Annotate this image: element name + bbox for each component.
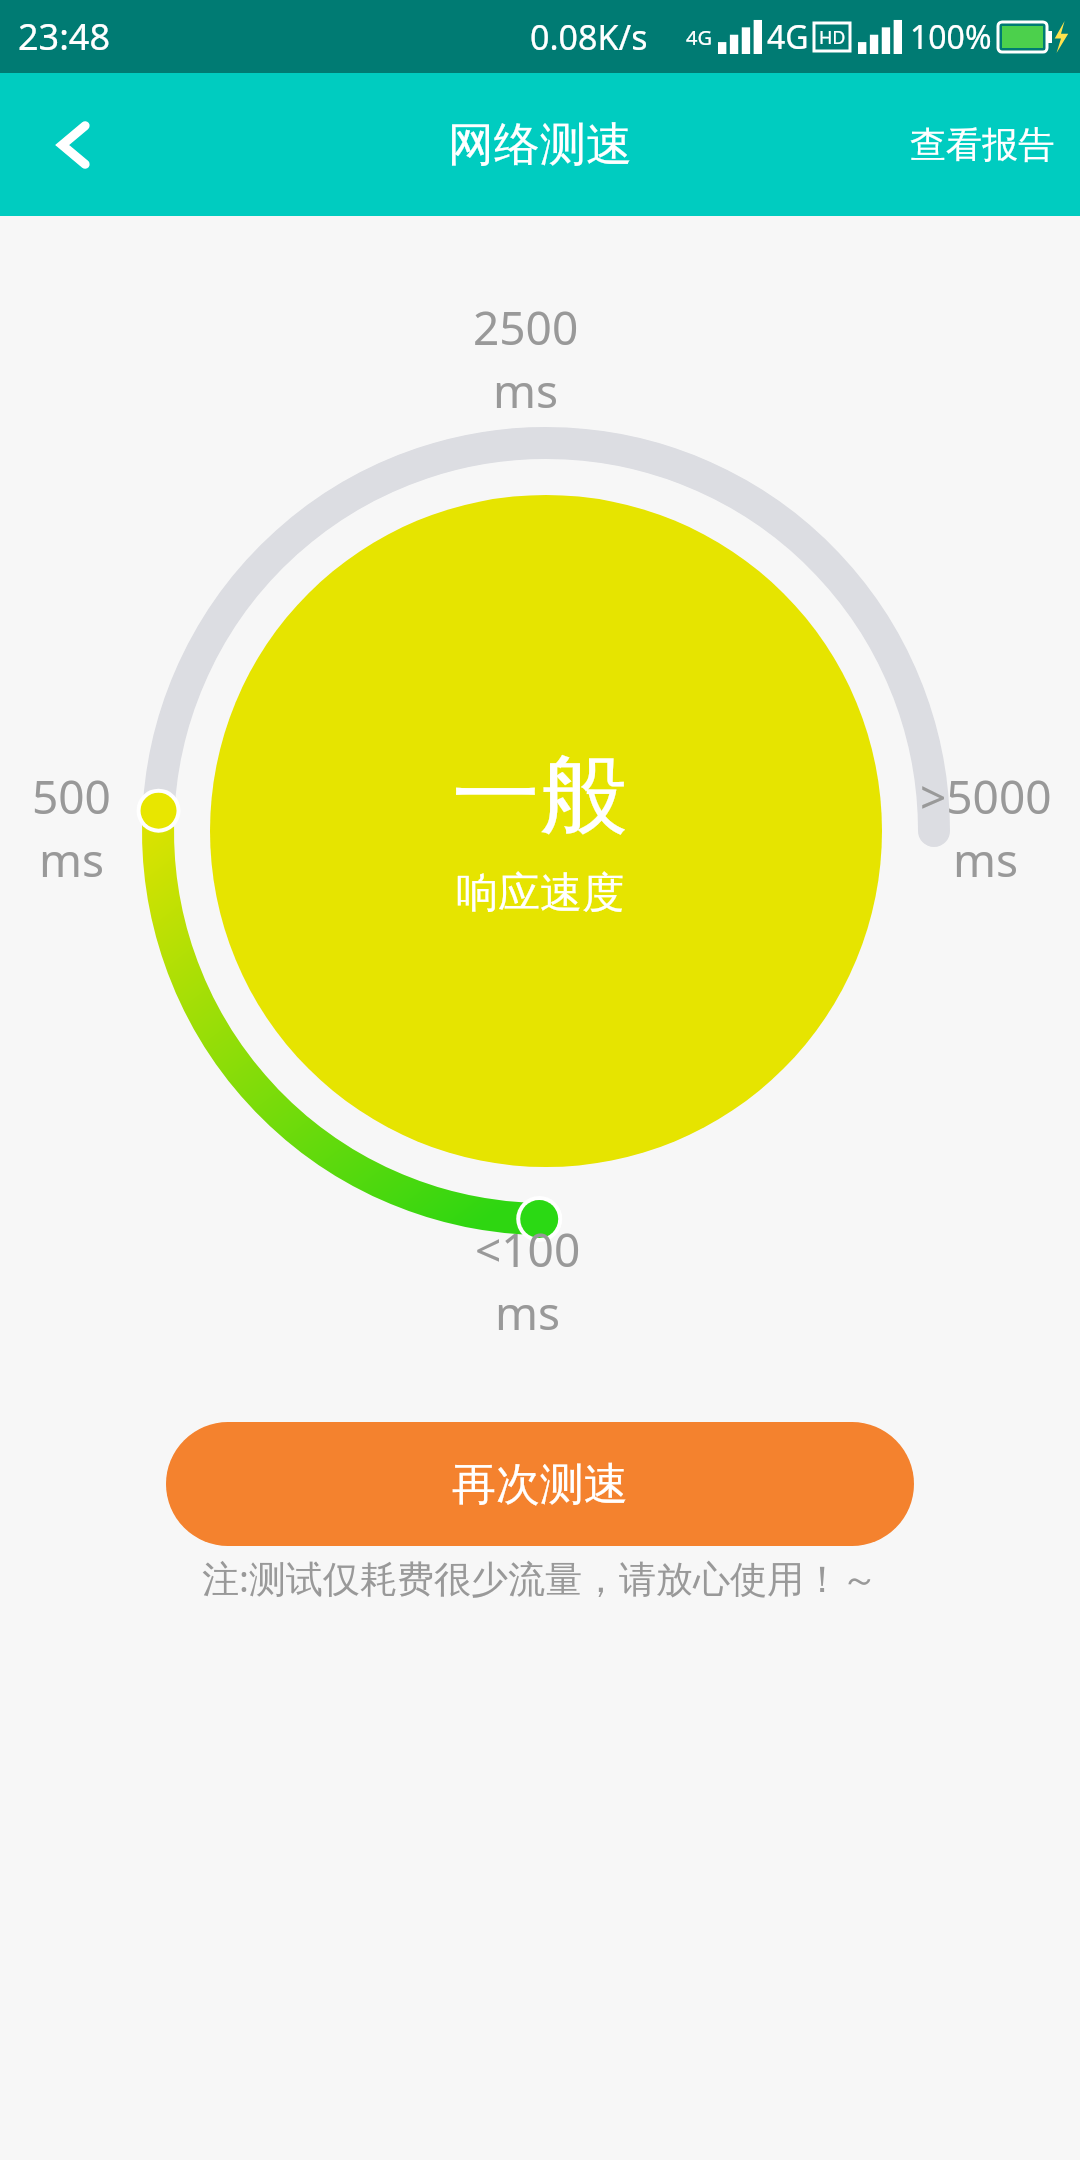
staticText: 4G [767, 15, 809, 59]
staticText: ms [953, 828, 1019, 891]
staticText: 查看报告 [910, 122, 1054, 167]
staticText: 注:测试仅耗费很少流量，请放心使用！～ [202, 1552, 878, 1603]
staticText: 一般 [452, 740, 628, 851]
staticText: 4G [686, 24, 712, 51]
staticText: 2500 [473, 296, 579, 359]
button[interactable]: 再次测速 [166, 1422, 914, 1546]
staticText: 再次测速 [452, 1457, 628, 1512]
staticText: >5000 [920, 765, 1052, 828]
staticText: 500 [32, 765, 111, 828]
button[interactable]: Back [20, 90, 130, 200]
staticText: <100 [475, 1218, 581, 1281]
staticText: 100% [910, 15, 992, 59]
staticText: 23:48 [18, 12, 111, 61]
staticText: ms [495, 1281, 561, 1344]
staticText: ms [493, 359, 559, 422]
staticText: 0.08K/s [530, 14, 648, 60]
button[interactable]: 查看报告 [910, 122, 1054, 167]
staticText: 网络测速 [448, 116, 632, 174]
staticText: HD [819, 25, 846, 50]
staticText: 响应速度 [456, 867, 624, 920]
staticText: ms [39, 828, 105, 891]
